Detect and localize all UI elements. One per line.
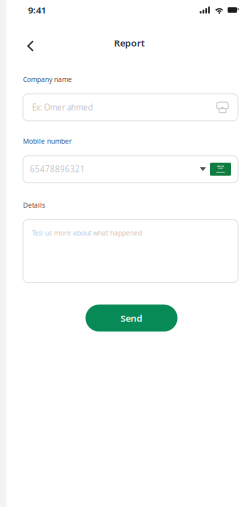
- staticText: Details: [23, 201, 45, 210]
- staticText: Send: [120, 312, 142, 324]
- button[interactable]: Back: [19, 22, 42, 48]
- staticText: Report: [114, 37, 145, 49]
- staticText: 9:41: [28, 4, 46, 16]
- button[interactable]: Send: [85, 305, 177, 332]
- staticText: Ex: Omer ahmed: [32, 102, 93, 113]
- staticText: Tell us more about what happened: [32, 229, 142, 237]
- staticText: Company name: [23, 75, 72, 84]
- staticText: Mobile number: [23, 137, 72, 146]
- staticText: 65478896321: [30, 164, 85, 174]
